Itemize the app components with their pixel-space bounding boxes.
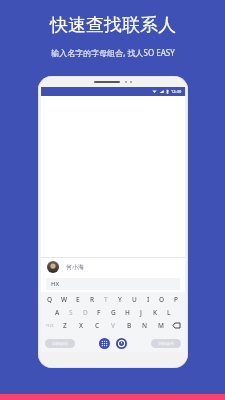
button[interactable]: N — [137, 320, 153, 330]
button[interactable]: F — [92, 307, 106, 317]
staticText: J — [140, 308, 142, 317]
staticText: HX — [51, 280, 60, 288]
staticText: Y — [118, 295, 122, 304]
button[interactable]: J — [134, 307, 148, 317]
button[interactable]: C — [89, 320, 105, 330]
button[interactable]: G — [106, 307, 120, 317]
staticText: 快速查找联系人 — [50, 14, 176, 37]
button[interactable]: R — [85, 294, 99, 304]
staticText: L — [167, 308, 171, 317]
staticText: ?123 — [46, 323, 54, 328]
button[interactable]: S — [64, 307, 78, 317]
button[interactable]: K — [148, 307, 162, 317]
button[interactable]: HX — [46, 278, 180, 290]
button[interactable]: U — [127, 294, 141, 304]
button[interactable]: X — [73, 320, 89, 330]
staticText: X — [79, 321, 83, 330]
staticText: H — [125, 308, 130, 317]
button[interactable]: H — [120, 307, 134, 317]
staticText: O — [159, 295, 165, 304]
staticText: V — [111, 321, 115, 330]
staticText: T — [104, 295, 108, 304]
button[interactable]: Q — [43, 294, 57, 304]
staticText: 何小海 — [66, 263, 84, 271]
staticText: S — [69, 308, 73, 317]
button[interactable]: T — [99, 294, 113, 304]
button[interactable]: 何小海 — [41, 258, 185, 276]
button[interactable]: I — [141, 294, 155, 304]
staticText: B — [127, 321, 132, 330]
button[interactable]: V — [105, 320, 121, 330]
staticText: 12:30 — [171, 89, 182, 94]
staticText: R — [90, 295, 95, 304]
staticText: N — [142, 321, 148, 330]
staticText: A — [55, 308, 60, 317]
staticText: M — [158, 321, 164, 330]
staticText: W — [61, 295, 68, 304]
staticText: D — [83, 308, 88, 317]
button[interactable]: O — [155, 294, 169, 304]
button[interactable]: P — [169, 294, 183, 304]
button[interactable]: Recents — [116, 338, 127, 349]
staticText: K — [153, 308, 158, 317]
button[interactable]: E — [71, 294, 85, 304]
staticText: 切换操作 — [52, 341, 68, 346]
button[interactable]: M — [153, 320, 169, 330]
staticText: 切换操作 — [158, 341, 174, 346]
staticText: P — [174, 295, 178, 304]
staticText: C — [95, 321, 100, 330]
staticText: F — [97, 308, 101, 317]
button[interactable]: W — [57, 294, 71, 304]
button[interactable]: B — [121, 320, 137, 330]
staticText: E — [76, 295, 80, 304]
button[interactable]: 切换操作 — [45, 339, 75, 348]
staticText: Q — [47, 295, 53, 304]
staticText: G — [111, 308, 116, 317]
button[interactable]: Backspace — [169, 320, 183, 330]
button[interactable]: L — [162, 307, 176, 317]
button[interactable]: Z — [57, 320, 73, 330]
button[interactable]: D — [78, 307, 92, 317]
button[interactable]: 切换操作 — [151, 339, 181, 348]
staticText: U — [132, 295, 137, 304]
staticText: Z — [63, 321, 67, 330]
staticText: I — [147, 295, 150, 304]
button[interactable]: Y — [113, 294, 127, 304]
button[interactable]: A — [50, 307, 64, 317]
button[interactable]: ?123 — [43, 320, 57, 330]
staticText: 输入名字的字母组合, 找人SO EASY — [51, 47, 175, 58]
button[interactable]: Dialpad — [99, 338, 110, 349]
